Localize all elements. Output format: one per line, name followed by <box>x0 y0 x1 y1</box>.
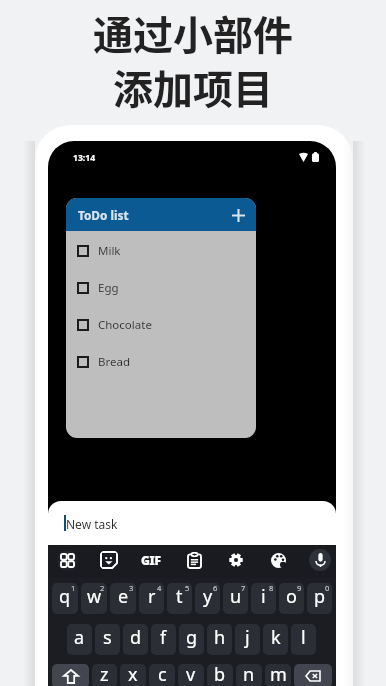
staticText: m <box>270 664 287 686</box>
staticText: Chocolate <box>98 317 152 333</box>
staticText: k <box>271 625 281 650</box>
staticText: z <box>100 664 109 686</box>
staticText: 通过小部件 <box>93 4 293 62</box>
staticText: n <box>243 664 255 686</box>
button[interactable]: l <box>291 624 316 655</box>
button[interactable]: q <box>52 583 78 614</box>
button[interactable]: GIF <box>140 549 162 571</box>
staticText: 5 <box>185 583 190 593</box>
button[interactable]: x <box>120 664 146 686</box>
button[interactable]: d <box>123 624 148 655</box>
staticText: 3 <box>129 583 134 593</box>
staticText: 4 <box>157 583 162 593</box>
button[interactable]: New task <box>48 501 336 545</box>
staticText: b <box>214 664 226 686</box>
button[interactable]: Egg <box>66 280 256 317</box>
button[interactable]: Shift <box>52 664 89 686</box>
button[interactable]: h <box>207 624 232 655</box>
staticText: 2 <box>100 583 105 593</box>
button[interactable]: n <box>236 664 262 686</box>
staticText: a <box>74 625 85 650</box>
staticText: o <box>286 584 297 609</box>
staticText: h <box>214 625 226 650</box>
button[interactable]: g <box>179 624 204 655</box>
staticText: i <box>261 584 266 609</box>
staticText: p <box>314 584 326 609</box>
button[interactable]: Stickers <box>98 549 120 571</box>
staticText: ToDo list <box>78 207 129 223</box>
staticText: d <box>130 625 142 650</box>
staticText: t <box>176 584 183 609</box>
button[interactable]: p <box>307 583 332 614</box>
staticText: v <box>186 664 196 686</box>
button[interactable]: e <box>110 583 136 614</box>
button[interactable]: b <box>207 664 233 686</box>
staticText: g <box>186 625 198 650</box>
button[interactable]: o <box>279 583 304 614</box>
staticText: New task <box>66 516 118 532</box>
staticText: 添加项目 <box>113 58 273 116</box>
button[interactable]: ToDo list <box>66 198 256 231</box>
staticText: 8 <box>269 583 274 593</box>
staticText: 6 <box>213 583 218 593</box>
staticText: 0 <box>325 583 330 593</box>
button[interactable]: w <box>81 583 107 614</box>
staticText: Egg <box>98 280 119 296</box>
staticText: w <box>87 584 102 609</box>
button[interactable]: s <box>95 624 120 655</box>
staticText: GIF <box>141 552 161 568</box>
staticText: y <box>203 584 213 609</box>
staticText: e <box>118 584 129 609</box>
button[interactable]: r <box>139 583 164 614</box>
staticText: x <box>128 664 138 686</box>
button[interactable]: k <box>263 624 288 655</box>
button[interactable]: c <box>149 664 175 686</box>
button[interactable]: j <box>235 624 260 655</box>
button[interactable]: v <box>178 664 204 686</box>
button[interactable]: Settings <box>225 549 247 571</box>
staticText: l <box>301 625 306 650</box>
button[interactable]: Voice input <box>309 549 331 571</box>
staticText: 1 <box>71 583 76 593</box>
button[interactable]: f <box>151 624 176 655</box>
button[interactable]: i <box>251 583 276 614</box>
button[interactable]: m <box>265 664 291 686</box>
button[interactable]: Themes <box>267 549 289 571</box>
button[interactable]: u <box>223 583 248 614</box>
button[interactable]: a <box>67 624 92 655</box>
button[interactable]: t <box>167 583 192 614</box>
staticText: 9 <box>297 583 302 593</box>
staticText: 7 <box>241 583 246 593</box>
button[interactable]: Chocolate <box>66 317 256 354</box>
button[interactable]: Apps <box>56 549 78 571</box>
button[interactable]: z <box>92 664 117 686</box>
staticText: 13:14 <box>73 152 96 164</box>
button[interactable]: Backspace <box>294 664 332 686</box>
staticText: j <box>245 625 250 650</box>
button[interactable]: y <box>195 583 220 614</box>
button[interactable]: Clipboard <box>183 549 205 571</box>
button[interactable]: Milk <box>66 243 256 280</box>
button[interactable]: Bread <box>66 354 256 391</box>
staticText: s <box>103 625 112 650</box>
staticText: Bread <box>98 354 131 370</box>
staticText: f <box>160 625 167 650</box>
button[interactable]: Add item <box>228 205 248 225</box>
staticText: c <box>158 664 167 686</box>
staticText: r <box>148 584 156 609</box>
staticText: Milk <box>98 243 121 259</box>
staticText: u <box>230 584 242 609</box>
staticText: q <box>59 584 71 609</box>
